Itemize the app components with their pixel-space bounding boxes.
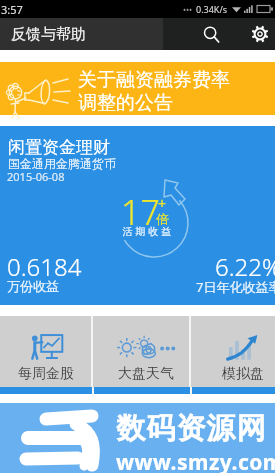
button[interactable]: 关于融资融券费率 调整的公告 — [0, 62, 275, 115]
staticText: 活期收益 — [121, 225, 173, 238]
staticText: 每周金股 — [18, 365, 74, 383]
button[interactable] — [0, 316, 92, 387]
button[interactable] — [190, 316, 275, 387]
button[interactable] — [92, 316, 190, 387]
staticText: 17 — [121, 189, 160, 235]
staticText: 数码资源网 — [116, 410, 266, 447]
button[interactable]: 反馈与帮助 — [0, 18, 163, 50]
staticText: 倍 — [156, 211, 169, 227]
staticText: www.smzy.com — [116, 448, 275, 473]
staticText: 闲置资金理财 — [8, 137, 110, 158]
staticText: 2015-06-08 — [7, 169, 65, 184]
staticText: 0.34K/s — [196, 3, 228, 15]
staticText: 万份收益 — [7, 278, 59, 294]
staticText: 大盘天气 — [118, 365, 174, 383]
staticText: 7日年化收益率 — [196, 278, 275, 296]
staticText: 6.22% — [215, 250, 275, 283]
staticText: 3:57 — [1, 2, 23, 17]
staticText: ••• — [183, 4, 193, 15]
staticText: 0.6184 — [7, 250, 82, 283]
staticText: + — [158, 194, 167, 213]
staticText: 关于融资融券费率 调整的公告 — [78, 68, 230, 115]
button[interactable]: Search — [191, 18, 231, 50]
button[interactable]: 闲置资金理财 — [0, 126, 275, 305]
staticText: 模拟盘 — [222, 365, 264, 383]
staticText: 国金通用金腾通货币 — [8, 156, 116, 171]
button[interactable]: Settings — [245, 18, 275, 50]
staticText: 反馈与帮助 — [11, 25, 86, 44]
